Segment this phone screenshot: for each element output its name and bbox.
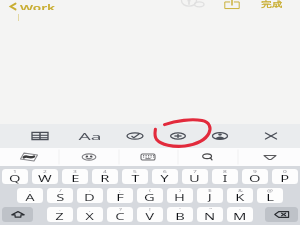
staticText: - (29, 188, 31, 193)
staticText: 3 (73, 169, 77, 174)
button[interactable]: " (197, 207, 223, 222)
staticText: $ (208, 188, 212, 193)
staticText: 4 (103, 169, 107, 174)
staticText: W (38, 173, 52, 184)
button[interactable]: ) (167, 188, 193, 203)
staticText: Y (160, 173, 170, 184)
button[interactable]: 9 (242, 169, 268, 184)
button[interactable]: ? (107, 207, 133, 222)
button[interactable]: Shift (2, 207, 33, 222)
button[interactable]: Keyboard settings (133, 148, 163, 166)
staticText: C (115, 211, 125, 222)
button[interactable]: 5 (122, 169, 148, 184)
staticText: ? (119, 207, 122, 212)
button[interactable]: Sync to iCloud (179, 0, 204, 9)
staticText: & (238, 188, 243, 193)
staticText: " (209, 207, 212, 212)
staticText: ( (149, 188, 151, 193)
button[interactable]: Emoji (74, 148, 104, 166)
staticText: Work (20, 2, 56, 10)
staticText: U (189, 173, 201, 184)
button[interactable]: : (77, 188, 103, 203)
staticText: , (89, 207, 91, 212)
staticText: H (174, 192, 186, 203)
button[interactable]: 4 (92, 169, 118, 184)
button[interactable]: . (47, 207, 73, 222)
button[interactable]: Search (193, 148, 223, 166)
staticText: ' (179, 207, 181, 212)
staticText: M (233, 211, 247, 222)
button[interactable]: Hide keyboard (255, 148, 285, 166)
staticText: F (116, 192, 125, 203)
staticText: ; (119, 188, 121, 193)
staticText: / (59, 188, 62, 193)
staticText: O (249, 173, 261, 184)
staticText: 5 (133, 169, 137, 174)
button[interactable]: Work (10, 1, 48, 11)
staticText: G (144, 192, 156, 203)
button[interactable]: ! (137, 207, 163, 222)
button[interactable]: 7 (182, 169, 208, 184)
staticText: ) (179, 188, 181, 193)
staticText: P (280, 173, 290, 184)
button[interactable]: Markup (205, 124, 235, 148)
button[interactable]: 3 (62, 169, 88, 184)
button[interactable]: ' (167, 207, 193, 222)
button[interactable]: Handwriting (14, 148, 44, 166)
staticText: V (145, 211, 155, 222)
staticText: 8 (223, 169, 227, 174)
staticText: : (89, 188, 91, 193)
staticText: R (100, 173, 110, 184)
staticText: . (59, 207, 61, 212)
staticText: S (56, 192, 65, 203)
staticText: Q (9, 173, 21, 184)
staticText: 0 (283, 169, 287, 174)
button[interactable]: ; (107, 188, 133, 203)
staticText: X (85, 211, 95, 222)
staticText: L (266, 192, 275, 203)
staticText: T (131, 173, 140, 184)
staticText: B (175, 211, 186, 222)
button[interactable]: Backspace (265, 207, 298, 222)
button[interactable]: Close (256, 124, 286, 148)
button[interactable]: & (227, 188, 253, 203)
staticText: 7 (193, 169, 197, 174)
staticText: A (25, 192, 35, 203)
button[interactable]: · (227, 207, 253, 222)
button[interactable]: ( (137, 188, 163, 203)
button[interactable]: @ (257, 188, 283, 203)
staticText: J (208, 192, 212, 203)
staticText: 9 (253, 169, 257, 174)
button[interactable]: 完成 (258, 0, 284, 11)
button[interactable]: Add attachment (163, 124, 193, 148)
button[interactable]: 2 (32, 169, 58, 184)
button[interactable]: 8 (212, 169, 238, 184)
staticText: 1 (13, 169, 17, 174)
button[interactable]: / (47, 188, 73, 203)
button[interactable]: Aa (75, 124, 105, 148)
staticText: · (239, 207, 241, 212)
staticText: 6 (163, 169, 167, 174)
button[interactable]: $ (197, 188, 223, 203)
staticText: 完成 (261, 0, 282, 10)
staticText: Z (55, 211, 65, 222)
button[interactable]: Share (224, 0, 240, 9)
staticText: Aa (78, 129, 102, 142)
staticText: ! (149, 207, 151, 212)
staticText: 2 (43, 169, 47, 174)
staticText: D (84, 192, 96, 203)
button[interactable]: Checklist (120, 124, 150, 148)
staticText: N (204, 211, 216, 222)
button[interactable]: 0 (272, 169, 298, 184)
staticText: E (71, 173, 80, 184)
button[interactable]: - (17, 188, 43, 203)
button[interactable]: 1 (2, 169, 28, 184)
staticText: I (223, 173, 228, 184)
button[interactable]: 6 (152, 169, 178, 184)
button[interactable]: , (77, 207, 103, 222)
button[interactable]: Table (25, 124, 55, 148)
staticText: @ (267, 188, 273, 193)
staticText: K (235, 192, 245, 203)
